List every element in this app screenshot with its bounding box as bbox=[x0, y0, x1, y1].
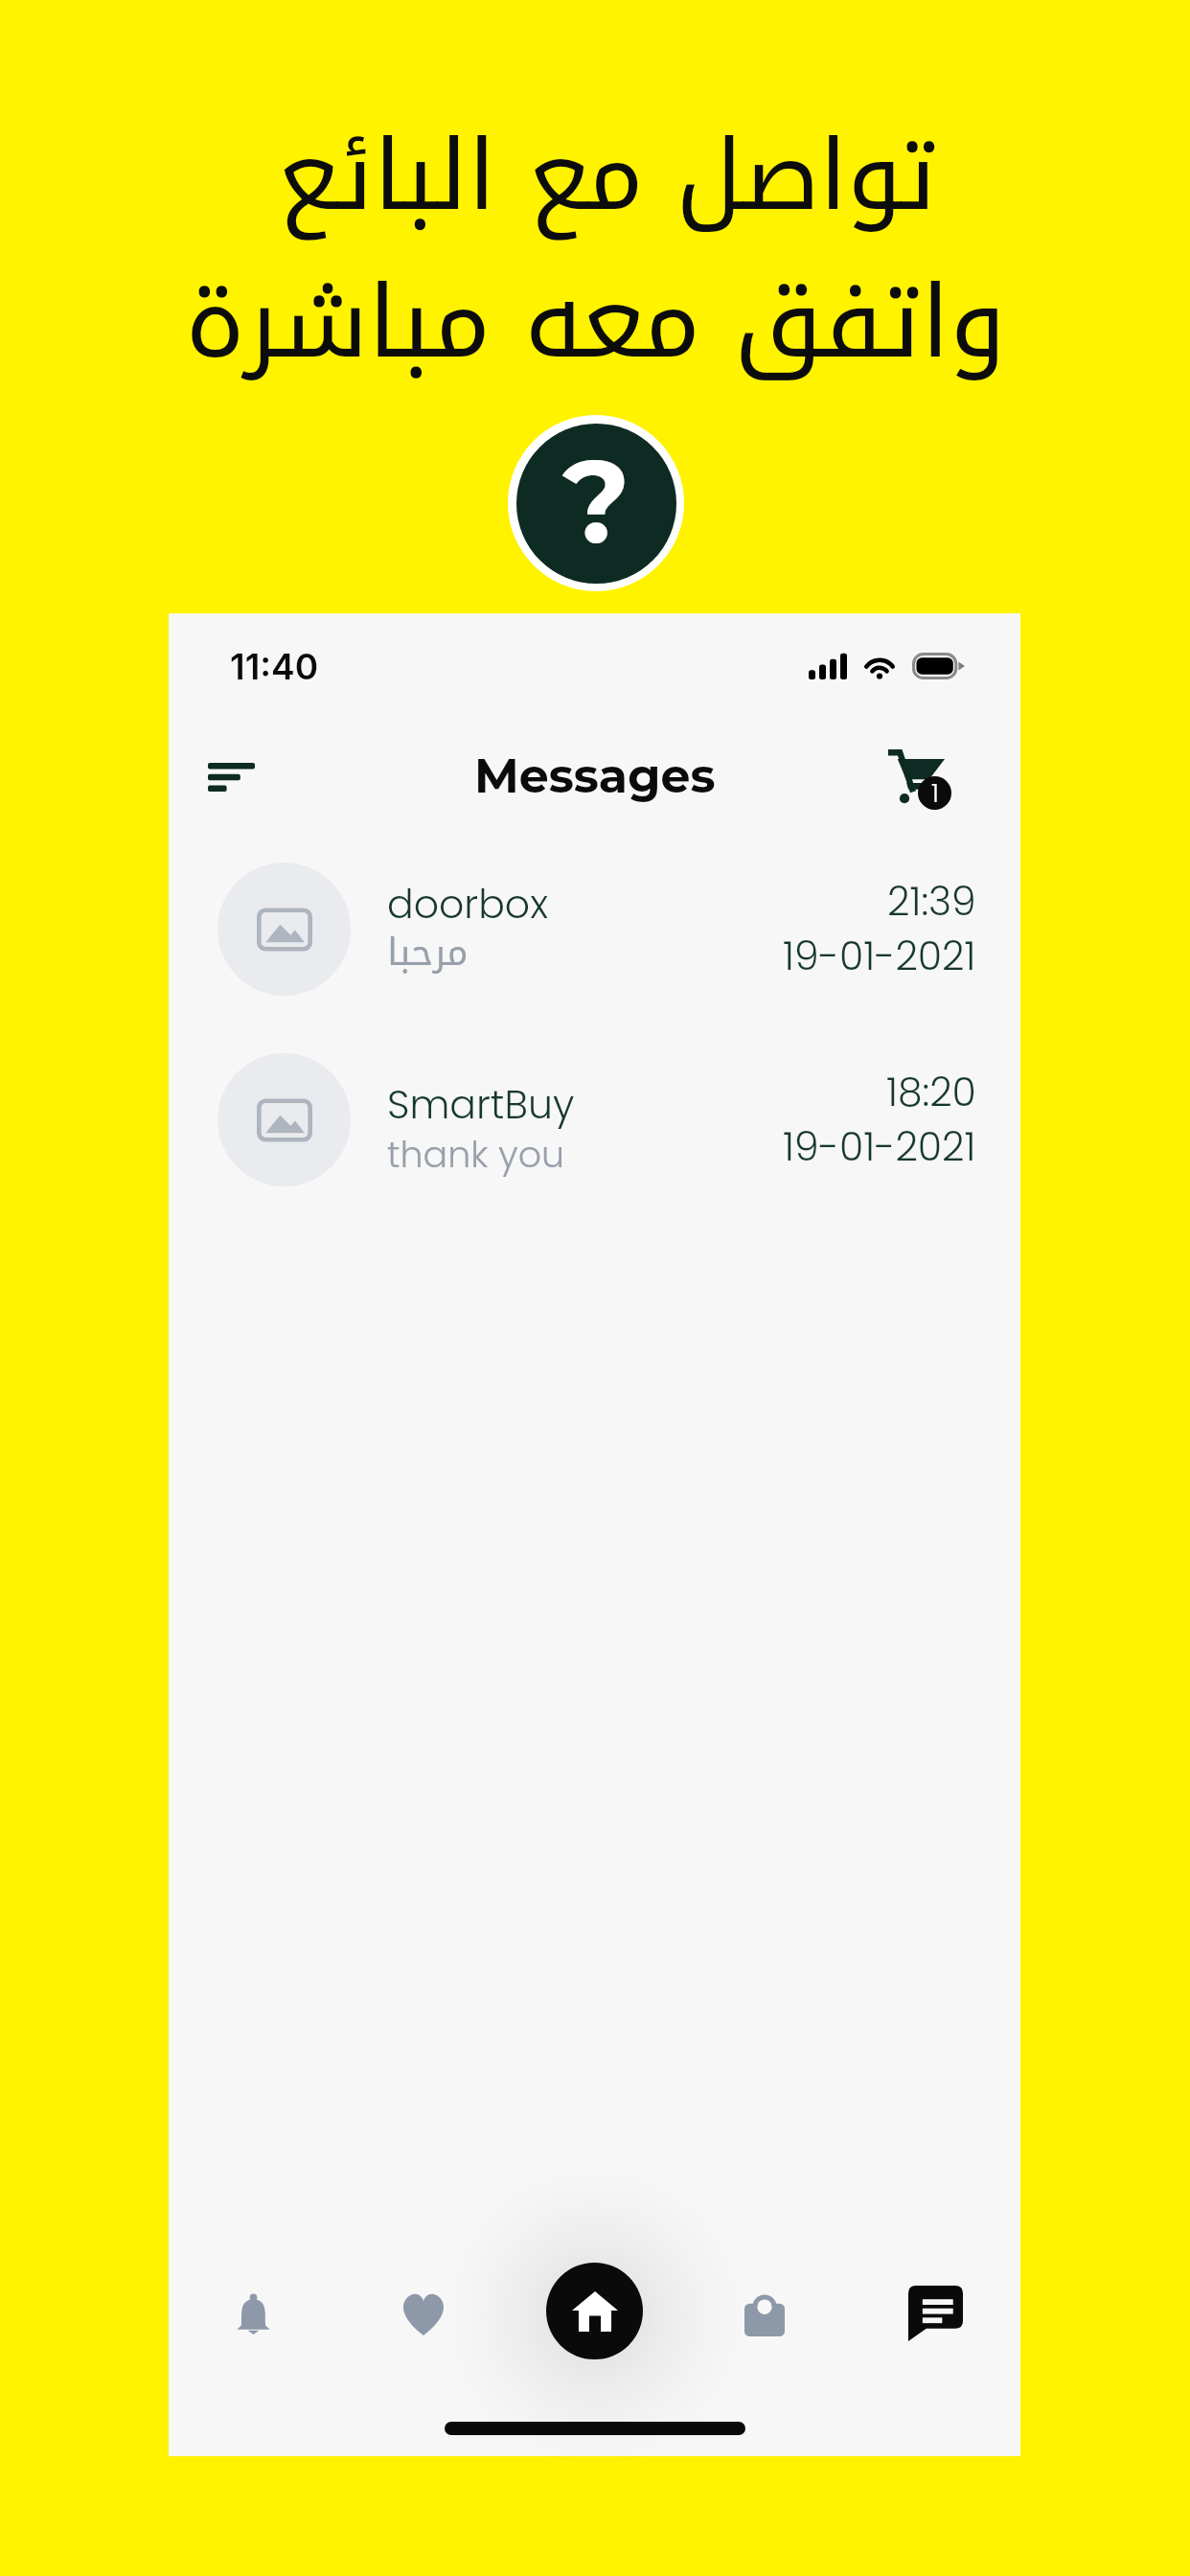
staticText: doorbox bbox=[387, 877, 549, 931]
button[interactable]: Shop bbox=[679, 2246, 850, 2380]
button[interactable]: doorbox bbox=[169, 862, 1020, 996]
button[interactable]: Cart bbox=[887, 747, 956, 810]
button[interactable]: Notifications bbox=[169, 2246, 338, 2380]
staticText: 11:40 bbox=[230, 645, 319, 688]
staticText: Messages bbox=[474, 747, 716, 805]
button[interactable]: Home bbox=[546, 2263, 643, 2359]
button[interactable]: SmartBuy bbox=[169, 1052, 1020, 1186]
staticText: 19-01-2021 bbox=[783, 929, 976, 983]
button[interactable]: Messages bbox=[850, 2246, 1020, 2380]
staticText: 1 bbox=[931, 776, 939, 809]
staticText: 18:20 bbox=[886, 1065, 976, 1119]
button[interactable]: Filter bbox=[193, 739, 269, 816]
staticText: SmartBuy bbox=[387, 1077, 575, 1132]
button[interactable]: Help bbox=[508, 415, 684, 591]
staticText: مرحبا bbox=[387, 917, 469, 988]
staticText: واتفق معه مباشرة bbox=[185, 229, 1006, 418]
button[interactable]: Favorites bbox=[338, 2246, 509, 2380]
staticText: تواصل مع البائع bbox=[278, 85, 937, 269]
staticText: 19-01-2021 bbox=[783, 1119, 976, 1174]
staticText: thank you bbox=[387, 1129, 565, 1180]
staticText: ? bbox=[562, 431, 630, 571]
staticText: 21:39 bbox=[887, 874, 976, 929]
